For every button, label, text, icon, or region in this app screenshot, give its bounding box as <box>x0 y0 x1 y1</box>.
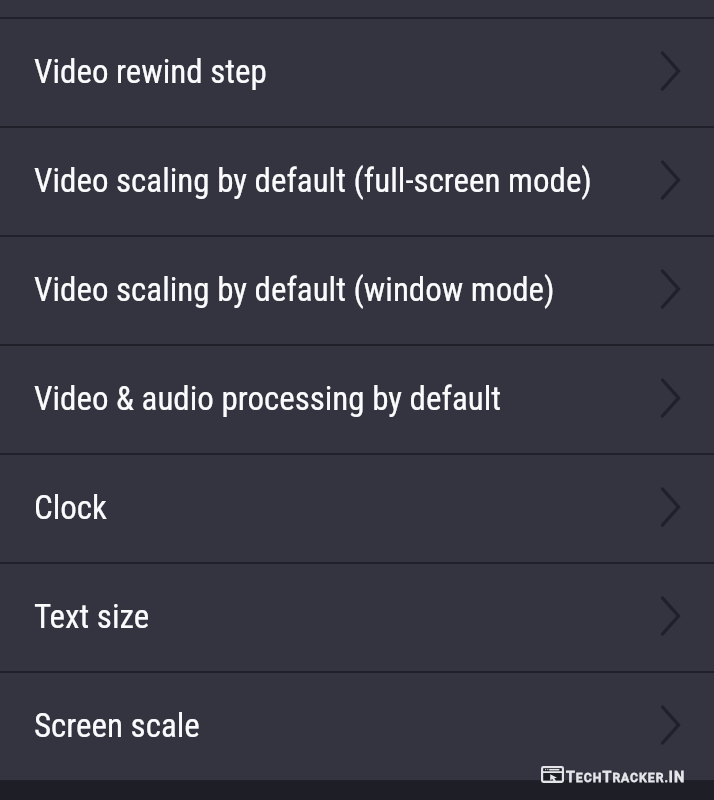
button[interactable]: Text size <box>0 564 714 671</box>
staticText: Screen scale <box>34 706 200 745</box>
other: Open setting <box>661 50 680 92</box>
button[interactable]: Video scaling by default (full-screen mo… <box>0 128 714 235</box>
other: Open setting <box>661 704 680 746</box>
button[interactable]: Clock <box>0 455 714 562</box>
other: Open setting <box>661 595 680 637</box>
button[interactable]: Video scaling by default (window mode) <box>0 237 714 344</box>
staticText: Video rewind step <box>34 52 267 91</box>
button[interactable]: Video rewind step <box>0 19 714 126</box>
button[interactable]: Video & audio processing by default <box>0 346 714 453</box>
staticText: Video scaling by default (window mode) <box>34 270 555 309</box>
staticText: Video scaling by default (full-screen mo… <box>34 161 592 200</box>
staticText: TECHTRACKER.IN <box>566 769 686 786</box>
other: Open setting <box>661 486 680 528</box>
staticText: Clock <box>34 488 107 527</box>
other: Open setting <box>661 268 680 310</box>
staticText: Video & audio processing by default <box>34 379 501 418</box>
other: Open setting <box>661 377 680 419</box>
button[interactable]: Screen scale <box>0 673 714 780</box>
staticText: Text size <box>34 597 150 636</box>
other: Open setting <box>661 159 680 201</box>
